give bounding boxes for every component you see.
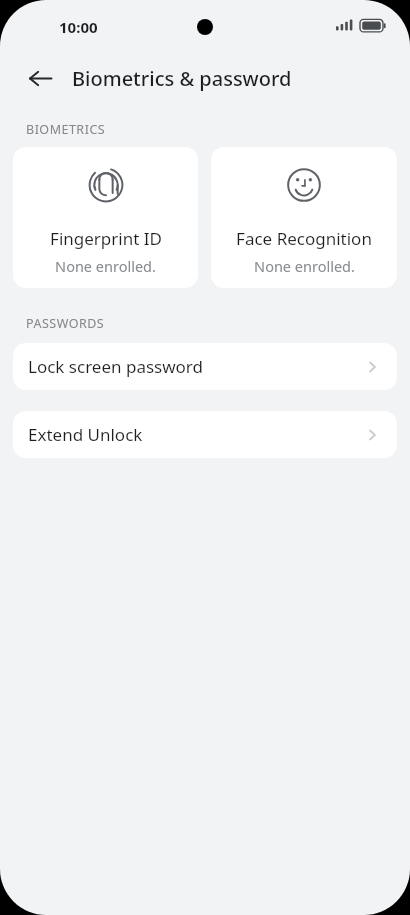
button[interactable]: Lock screen password	[13, 343, 397, 390]
staticText: Fingerprint ID	[50, 227, 162, 250]
button[interactable]: Face Recognition	[211, 147, 397, 288]
staticText: Face Recognition	[236, 227, 372, 250]
staticText: None enrolled.	[55, 256, 156, 276]
staticText: Extend Unlock	[28, 423, 143, 446]
staticText: PASSWORDS	[26, 315, 105, 332]
staticText: 10:00	[59, 17, 98, 37]
staticText: Lock screen password	[28, 355, 203, 378]
staticText: None enrolled.	[254, 256, 355, 276]
button[interactable]: Back	[18, 56, 62, 100]
staticText: BIOMETRICS	[26, 121, 106, 138]
button[interactable]: Extend Unlock	[13, 411, 397, 458]
staticText: Biometrics & password	[72, 65, 292, 92]
button[interactable]: Fingerprint ID	[13, 147, 198, 288]
